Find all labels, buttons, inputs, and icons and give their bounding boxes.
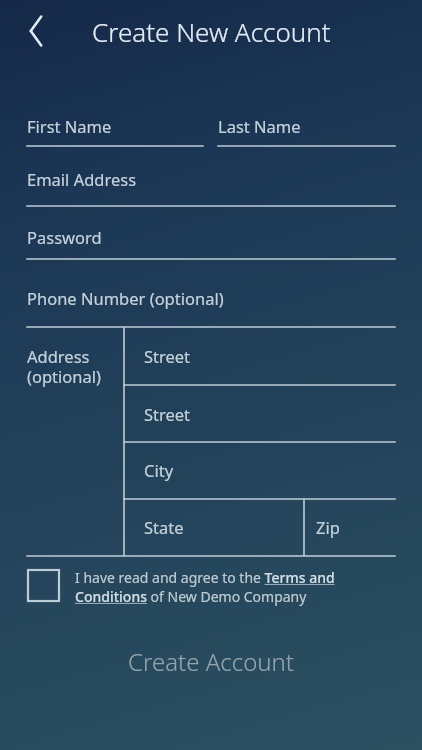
staticText: Phone Number (optional) [27,287,224,309]
staticText: Address [27,345,90,367]
staticText: Street [144,345,191,367]
staticText: Zip [316,516,340,538]
staticText: (optional) [27,365,101,387]
button[interactable]: I have read and agree to the Terms and C… [28,568,374,606]
staticText: City [144,459,174,481]
button[interactable]: Create Account [0,632,422,690]
staticText: Create Account [128,645,295,678]
staticText: Email Address [27,168,137,190]
staticText: I have read and agree to the Terms and C… [75,568,374,606]
staticText: First Name [27,115,112,137]
button[interactable]: Back [8,6,58,56]
staticText: Street [144,403,191,425]
staticText: Create New Account [92,14,331,49]
staticText: Password [27,226,102,248]
staticText: Last Name [218,115,301,137]
staticText: State [144,516,184,538]
